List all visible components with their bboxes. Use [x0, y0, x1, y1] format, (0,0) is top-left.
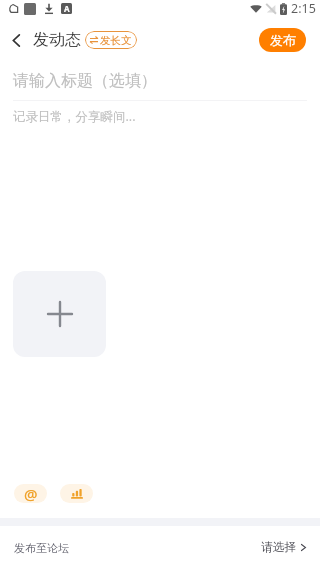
button[interactable]: 记录日常，分享瞬间...: [0, 101, 320, 125]
staticText: 发布至论坛: [14, 541, 69, 555]
button[interactable]: Mention: [14, 484, 47, 503]
staticText: @: [24, 484, 38, 503]
staticText: 2:15: [291, 0, 316, 17]
button[interactable]: 请输入标题（选填）: [0, 60, 320, 101]
staticText: 请选择: [261, 540, 297, 555]
button[interactable]: 发布: [259, 28, 306, 52]
button[interactable]: 发布至论坛: [0, 526, 320, 569]
staticText: 记录日常，分享瞬间...: [13, 108, 136, 125]
staticText: 发长文: [100, 34, 132, 47]
staticText: 发动态: [33, 30, 81, 50]
button[interactable]: 发长文: [85, 31, 137, 49]
staticText: A: [64, 3, 70, 14]
staticText: 发布: [270, 32, 296, 48]
button[interactable]: Add image: [13, 271, 106, 357]
button[interactable]: Back: [0, 20, 33, 60]
button[interactable]: Poll: [60, 484, 93, 503]
staticText: 请输入标题（选填）: [13, 71, 157, 91]
